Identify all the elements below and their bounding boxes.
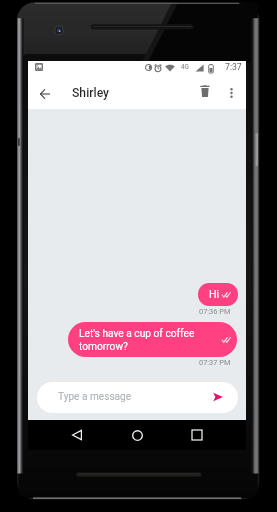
staticText: Hi (209, 288, 220, 301)
staticText: Shirley (72, 86, 110, 100)
button[interactable]: Home (123, 421, 151, 449)
staticText: Type a message (58, 391, 132, 403)
button[interactable]: Recent apps (183, 421, 211, 449)
staticText: 4G (181, 63, 189, 71)
button[interactable]: Type a message (37, 382, 238, 413)
staticText: 07:37 PM (199, 358, 231, 367)
button[interactable]: Let's have a cup of coffee tomorrow? (68, 322, 237, 357)
button[interactable]: Navigate up (31, 80, 59, 108)
button[interactable]: Send (201, 382, 235, 412)
staticText: 07:36 PM (199, 307, 231, 316)
button[interactable]: More options (219, 80, 244, 105)
staticText: Let's have a cup of coffee tomorrow? (79, 328, 195, 352)
button[interactable]: Back (63, 421, 91, 449)
button[interactable]: Delete conversation (192, 78, 218, 104)
button[interactable]: Hi (198, 283, 238, 306)
staticText: 7:37 (225, 62, 242, 72)
